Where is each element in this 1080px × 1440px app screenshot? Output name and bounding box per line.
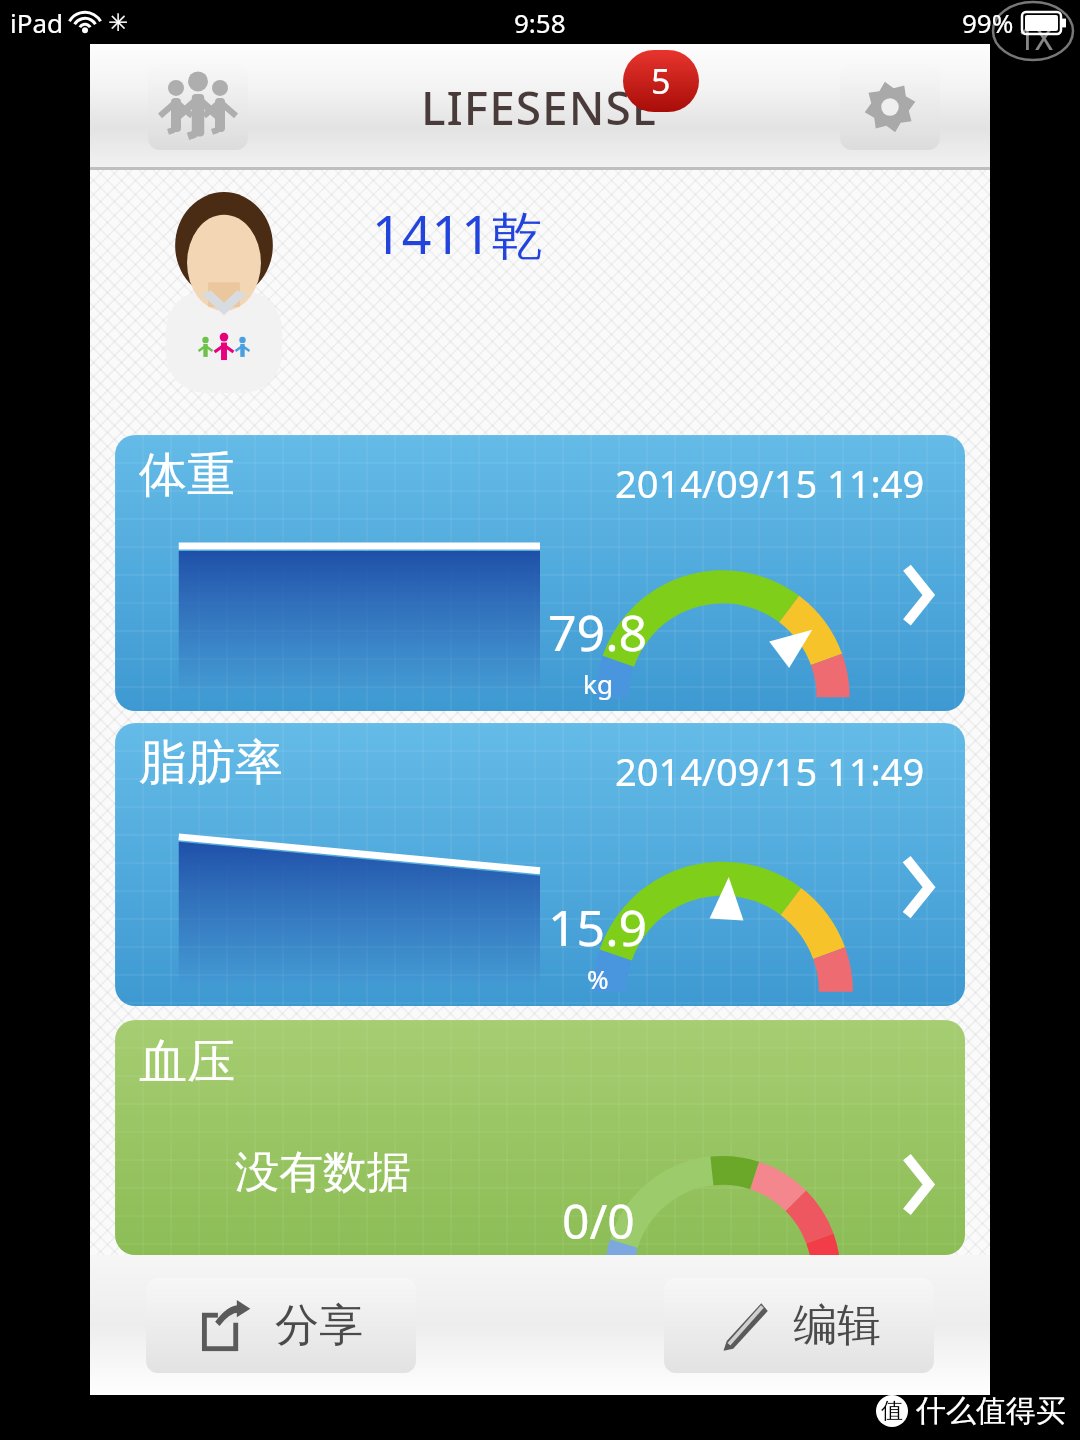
staticText: 2014/09/15 11:49	[615, 745, 925, 797]
staticText: 值	[881, 1397, 903, 1425]
button[interactable]: 脂肪率	[115, 723, 965, 1006]
staticText: 脂肪率	[139, 733, 283, 793]
button[interactable]: 分享	[146, 1278, 416, 1373]
staticText: 0/0	[562, 1188, 635, 1253]
staticText: 2014/09/15 11:49	[615, 457, 925, 509]
staticText: kg	[583, 666, 613, 701]
staticText: 血压	[139, 1032, 235, 1092]
button[interactable]: 体重	[115, 435, 965, 711]
staticText: 编辑	[793, 1298, 881, 1353]
staticText: iPad	[10, 5, 64, 40]
staticText: ✳	[108, 9, 129, 37]
staticText: %	[587, 961, 609, 996]
staticText: 5	[651, 58, 671, 104]
button[interactable]: 血压	[115, 1020, 965, 1255]
staticText: 9:58	[514, 5, 566, 40]
button[interactable]: 编辑	[664, 1278, 934, 1373]
staticText: 79.8	[548, 598, 648, 666]
button[interactable]: Settings	[840, 64, 940, 150]
staticText: 99%	[962, 5, 1014, 40]
staticText: 1411乾	[372, 198, 543, 269]
staticText: 分享	[275, 1298, 363, 1353]
staticText: 1X	[1018, 18, 1053, 59]
button[interactable]: Family members	[148, 64, 248, 150]
staticText: 体重	[139, 445, 235, 505]
staticText: LIFESENSE	[421, 76, 659, 139]
staticText: 没有数据	[235, 1145, 411, 1200]
staticText: 什么值得买	[916, 1392, 1066, 1430]
staticText: 15.9	[548, 893, 648, 961]
